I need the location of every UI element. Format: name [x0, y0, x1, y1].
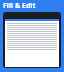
- staticText: Fill & Edit: [3, 1, 36, 11]
- button[interactable]: Fill & Edit: [0, 0, 64, 12]
